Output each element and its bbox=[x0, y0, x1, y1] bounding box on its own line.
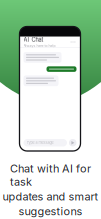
button[interactable]: Type a message bbox=[19, 139, 80, 151]
staticText: AI Chat bbox=[23, 36, 43, 43]
staticText: suggestions bbox=[18, 205, 82, 218]
button[interactable]: Send bbox=[69, 139, 76, 146]
staticText: Always here to help bbox=[23, 43, 55, 48]
staticText: Type a message bbox=[26, 140, 53, 145]
button[interactable]: AI Chat bbox=[19, 36, 80, 47]
staticText: updates and smart bbox=[2, 190, 98, 203]
button[interactable]: More options bbox=[69, 38, 76, 45]
staticText: Chat with AI for task bbox=[10, 162, 91, 188]
